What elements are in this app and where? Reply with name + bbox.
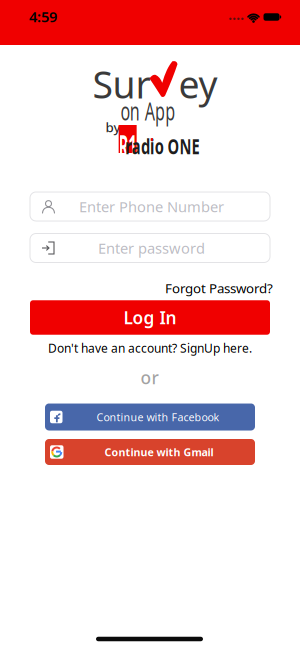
button[interactable]: Don't have an account? SignUp here. [48,340,252,356]
button[interactable]: Log In [30,300,270,335]
button[interactable]: Enter Phone Number [30,192,270,221]
staticText: on App [118,99,177,122]
button[interactable]: Continue with Facebook [45,403,255,430]
button[interactable]: Enter password [30,233,270,262]
button[interactable]: Forgot Password? [165,279,273,297]
staticText: Log In [123,306,176,329]
staticText: R1 [117,134,138,157]
staticText: Don't have an account? SignUp here. [48,340,252,356]
staticText: radio ONE [122,135,203,157]
staticText: Continue with Facebook [96,410,219,424]
staticText: Enter password [98,238,205,258]
button[interactable]: Continue with Gmail [45,439,255,465]
staticText: Forgot Password? [165,279,273,297]
staticText: by [105,118,120,136]
staticText: ey [178,59,217,109]
staticText: Sur [92,59,150,109]
staticText: or [140,366,158,389]
staticText: 4:59 [29,7,57,26]
staticText: Enter Phone Number [79,197,224,216]
staticText: Continue with Gmail [104,445,213,459]
